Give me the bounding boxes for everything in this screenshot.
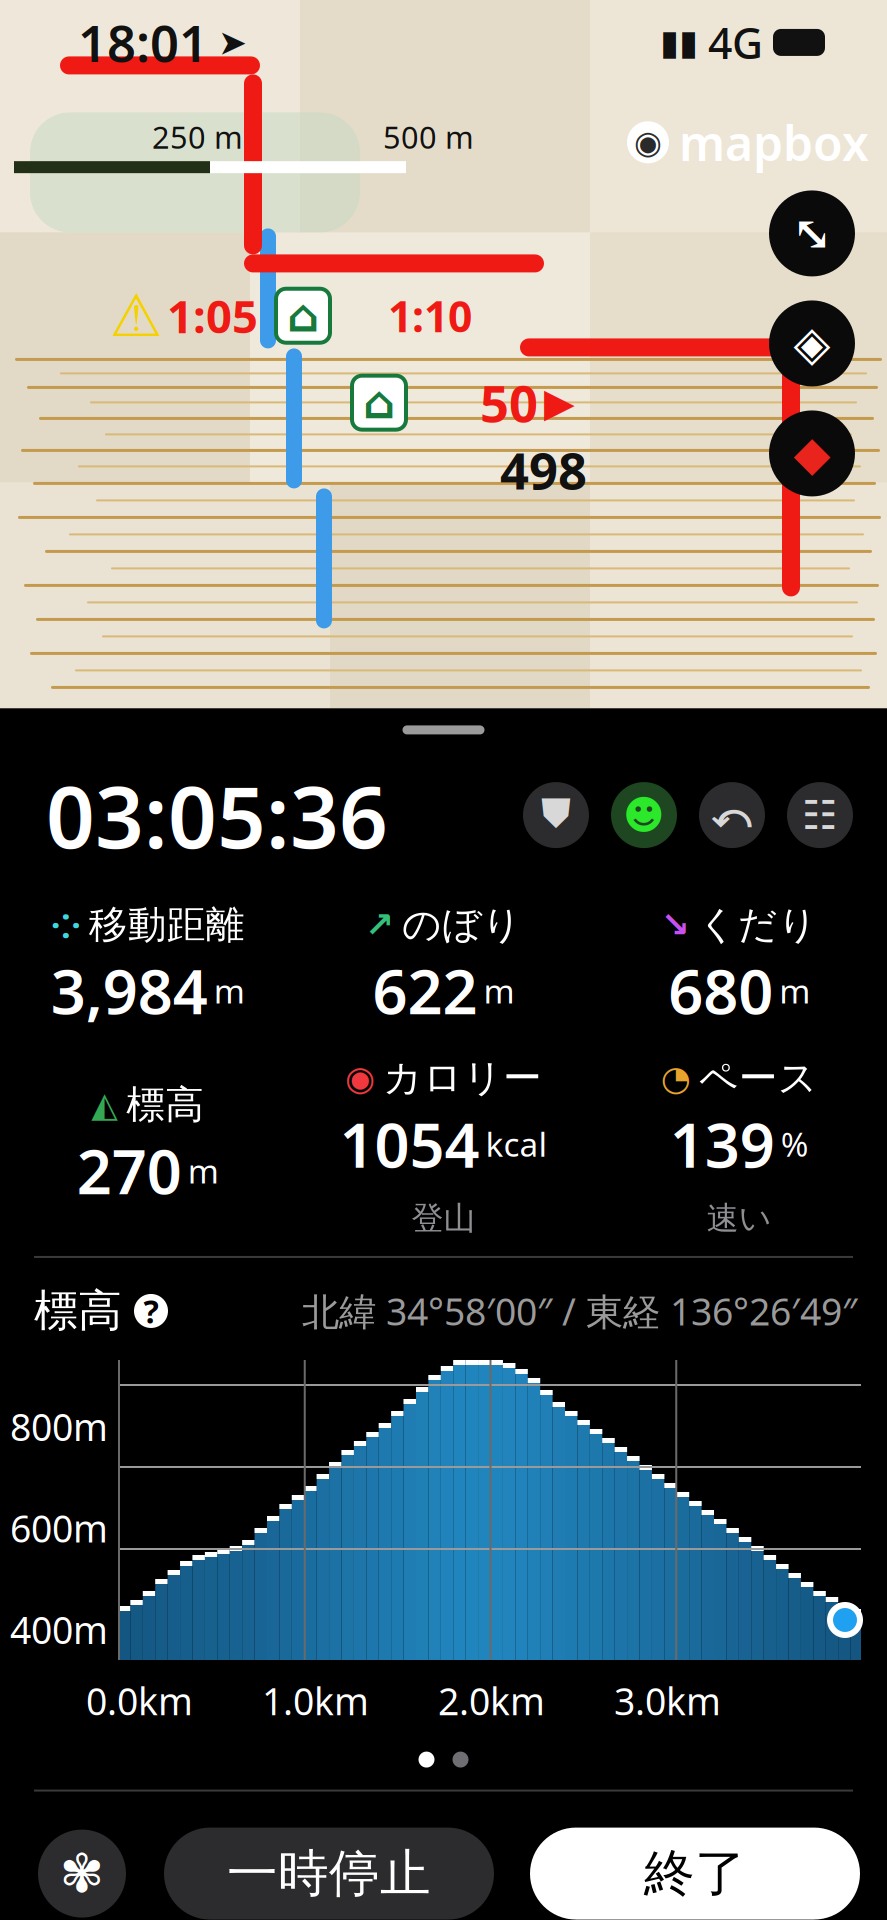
- staticText: 139: [670, 1103, 775, 1185]
- staticText: 移動距離: [89, 901, 245, 948]
- staticText: 600m: [10, 1503, 108, 1553]
- button[interactable]: Settings: [38, 1830, 126, 1918]
- staticText: 50: [480, 369, 538, 436]
- staticText: 3.0km: [614, 1676, 721, 1726]
- staticText: ▶: [544, 380, 575, 425]
- staticText: ↘: [661, 905, 690, 944]
- staticText: 270: [77, 1130, 182, 1211]
- staticText: ⌂: [363, 377, 395, 428]
- staticText: 250 m: [152, 116, 243, 157]
- button[interactable]: Members: [787, 782, 853, 848]
- staticText: kcal: [485, 1122, 547, 1166]
- button[interactable]: 終了: [530, 1828, 860, 1920]
- staticText: m: [483, 968, 514, 1013]
- button[interactable]: Record memo: [611, 782, 677, 848]
- staticText: 一時停止: [227, 1842, 431, 1905]
- staticText: ⌂: [287, 290, 319, 341]
- staticText: ◆: [793, 426, 830, 481]
- staticText: ?: [143, 1290, 158, 1332]
- staticText: ↗: [365, 905, 394, 944]
- staticText: 1:10: [388, 287, 472, 344]
- staticText: m: [779, 968, 810, 1013]
- staticText: ⚠: [110, 282, 163, 349]
- staticText: ◈: [793, 316, 830, 371]
- staticText: ☻: [623, 792, 665, 838]
- staticText: m: [188, 1148, 219, 1193]
- button[interactable]: Elevation help: [134, 1294, 168, 1328]
- staticText: 速い: [707, 1199, 772, 1238]
- staticText: のぼり: [402, 901, 522, 948]
- staticText: 3,984: [51, 950, 208, 1031]
- staticText: 1054: [339, 1103, 479, 1185]
- staticText: ◭: [91, 1085, 118, 1124]
- staticText: ▮▮: [660, 23, 698, 62]
- staticText: 終了: [644, 1842, 746, 1905]
- staticText: ◉: [634, 124, 662, 160]
- staticText: ⛊: [541, 796, 571, 835]
- staticText: ➤: [218, 23, 247, 62]
- button[interactable]: Resize map: [769, 190, 855, 276]
- staticText: くだり: [698, 901, 818, 948]
- staticText: ⁘: [51, 902, 81, 948]
- staticText: %: [781, 1122, 809, 1166]
- staticText: mapbox: [679, 110, 869, 174]
- staticText: 2.0km: [438, 1676, 545, 1726]
- staticText: ペース: [699, 1054, 818, 1102]
- staticText: 標高: [34, 1284, 122, 1338]
- button[interactable]: Compass: [769, 410, 855, 496]
- staticText: 18:01: [78, 9, 208, 76]
- staticText: 03:05:36: [46, 758, 388, 872]
- button[interactable]: Waypoints: [523, 782, 589, 848]
- staticText: 登山: [411, 1199, 475, 1238]
- staticText: ◉: [345, 1058, 375, 1098]
- staticText: ⤺: [710, 796, 753, 835]
- staticText: 1:05: [167, 286, 258, 346]
- staticText: 622: [372, 950, 477, 1031]
- staticText: 標高: [126, 1081, 204, 1129]
- staticText: ◔: [661, 1058, 691, 1098]
- staticText: ⤡: [792, 206, 832, 261]
- staticText: 400m: [10, 1605, 108, 1654]
- staticText: 1.0km: [262, 1676, 369, 1726]
- staticText: 680: [668, 950, 773, 1031]
- button[interactable]: 一時停止: [164, 1828, 494, 1920]
- staticText: 0.0km: [86, 1676, 193, 1726]
- staticText: 498: [500, 436, 587, 504]
- staticText: m: [214, 968, 245, 1013]
- button[interactable]: Map layers: [769, 300, 855, 386]
- staticText: ☷: [802, 792, 838, 838]
- staticText: カロリー: [383, 1054, 542, 1102]
- button[interactable]: Reroute: [699, 782, 765, 848]
- staticText: ✾: [59, 1843, 104, 1904]
- staticText: 4G: [708, 14, 763, 71]
- staticText: 北緯 34°58′00″ / 東経 136°26′49″: [302, 1286, 857, 1336]
- staticText: 800m: [10, 1402, 108, 1451]
- staticText: 500 m: [383, 116, 474, 157]
